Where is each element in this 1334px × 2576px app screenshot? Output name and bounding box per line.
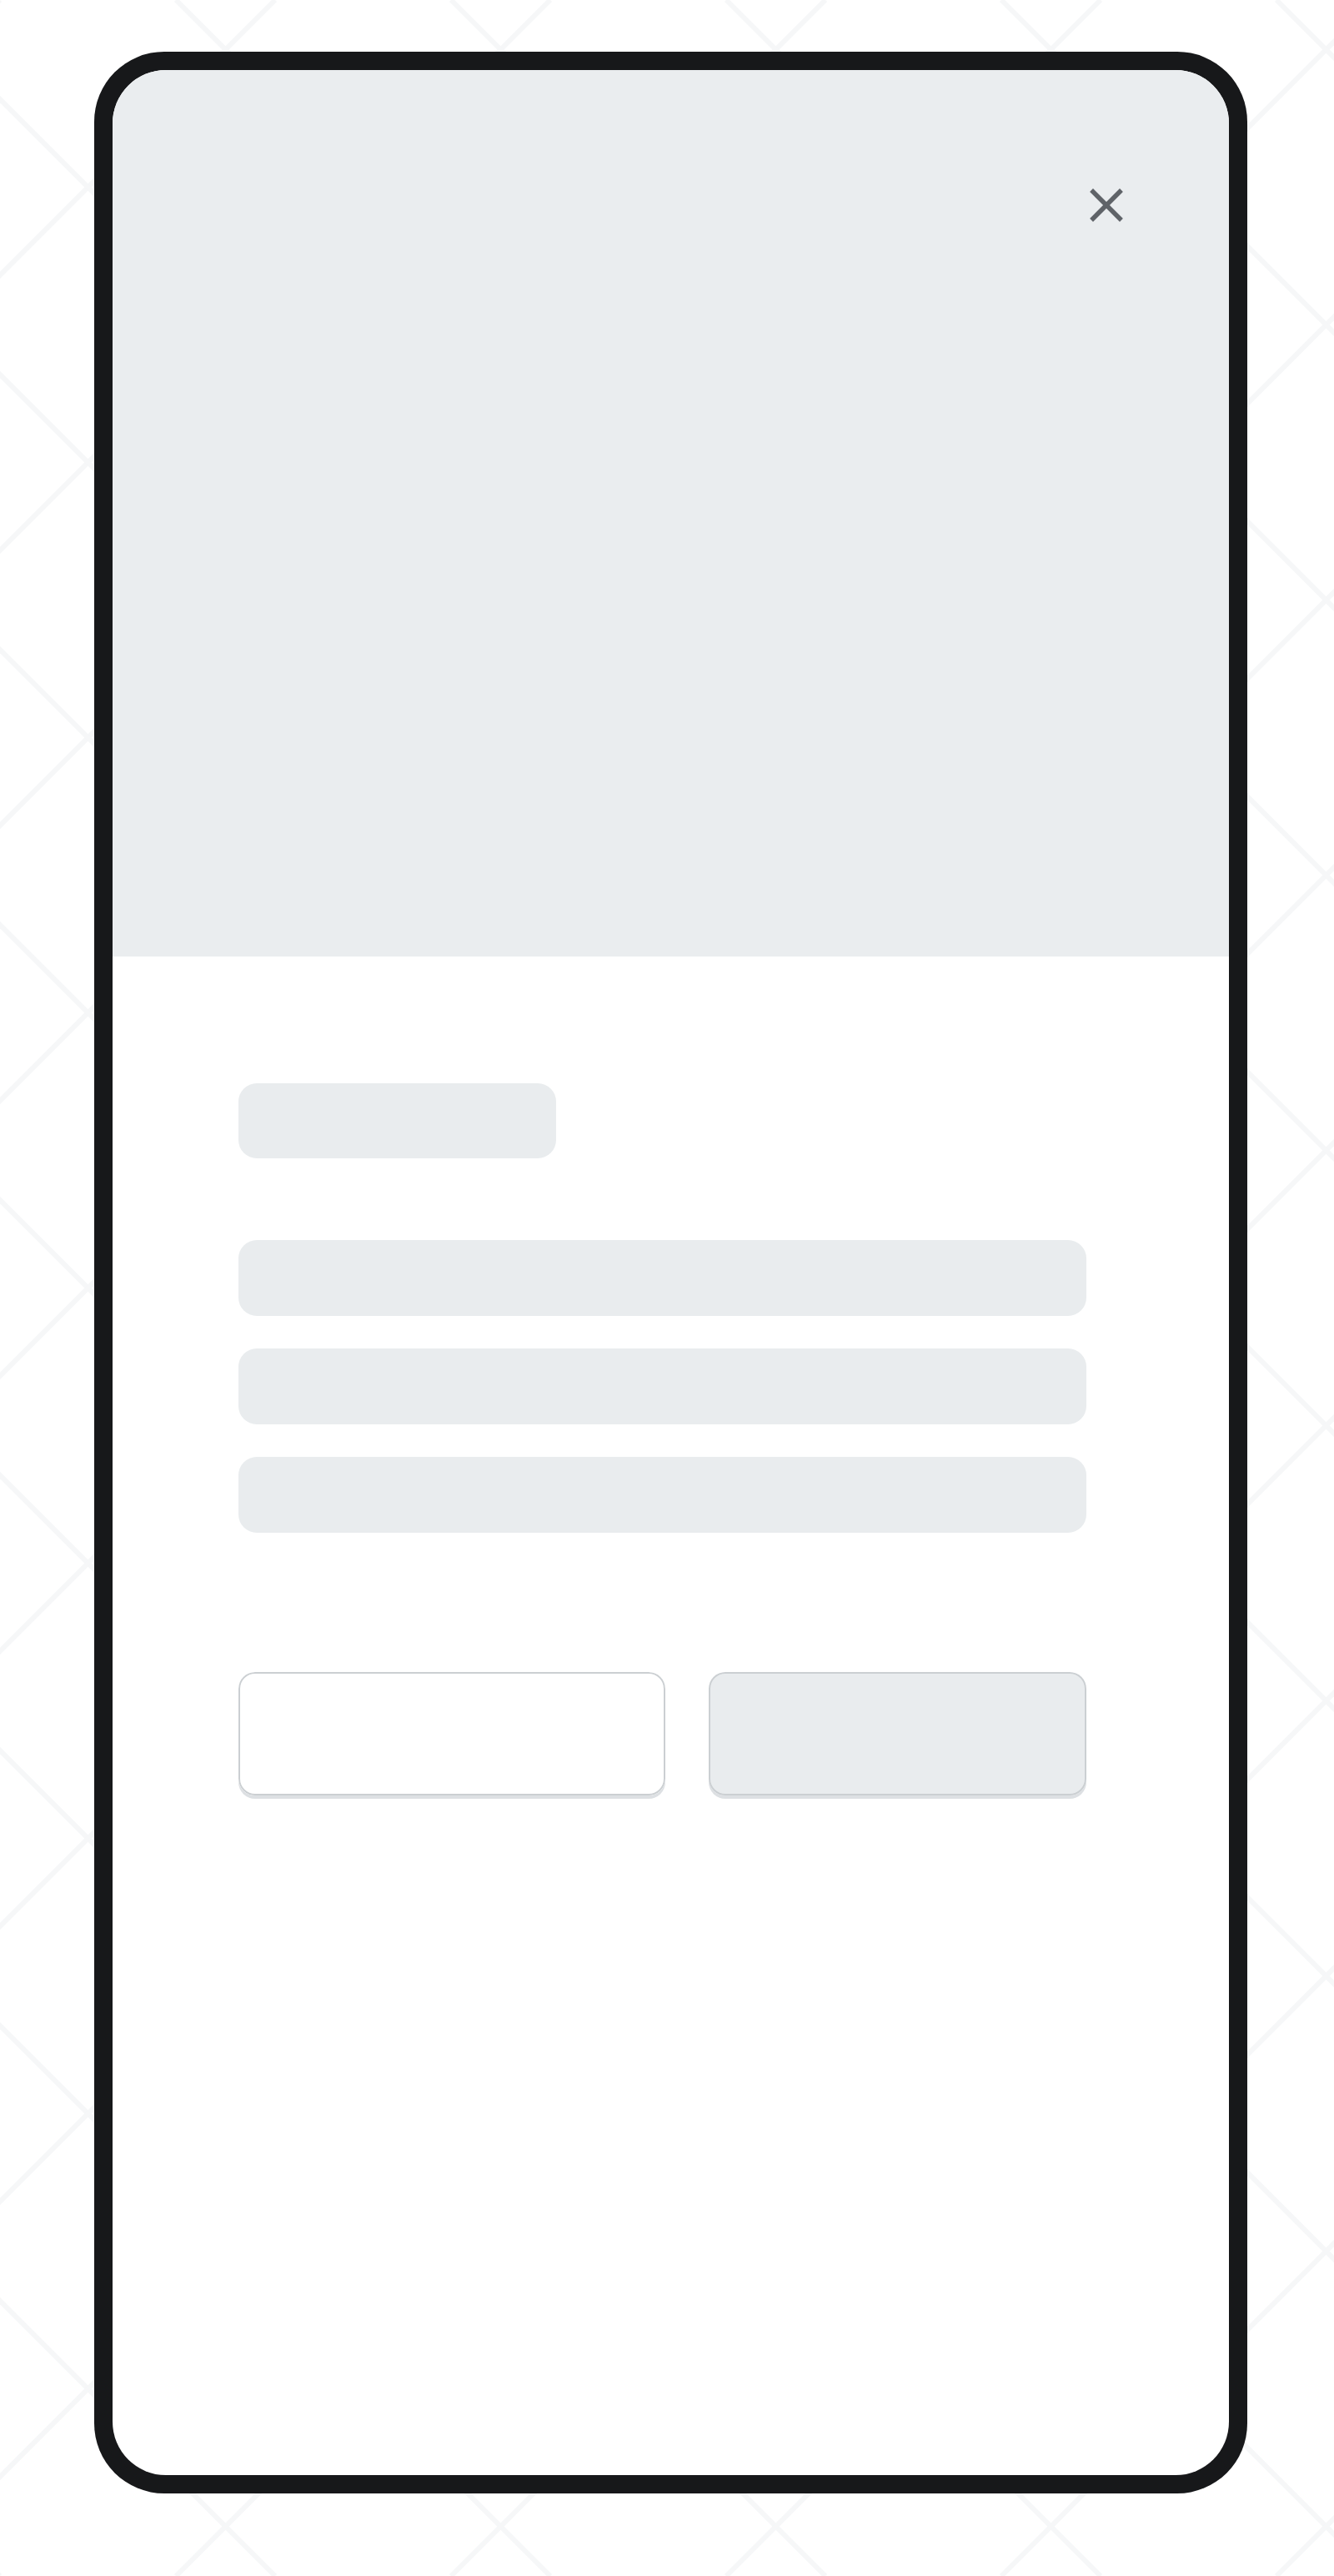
button[interactable]: Close [1071,170,1141,240]
button[interactable]: Primary action [709,1672,1086,1795]
button[interactable]: Secondary action [238,1672,665,1795]
